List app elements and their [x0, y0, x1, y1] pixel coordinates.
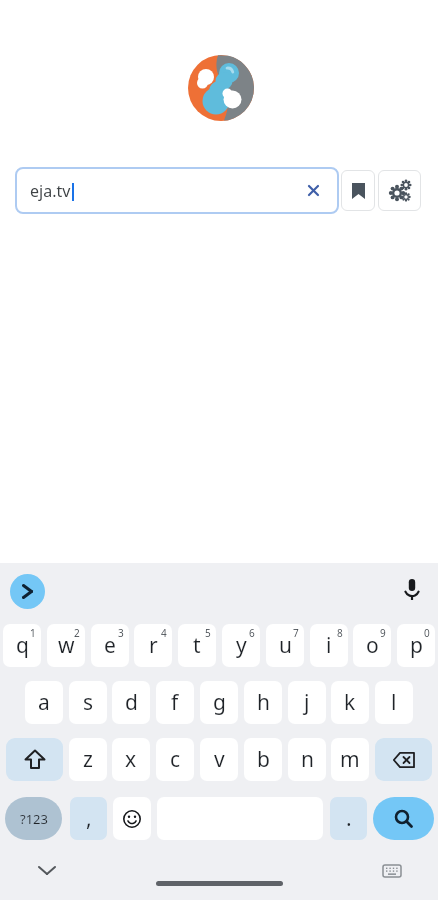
staticText: 0 [424, 626, 430, 640]
button[interactable]: o [353, 624, 391, 667]
staticText: o [366, 631, 379, 660]
staticText: 9 [380, 626, 386, 640]
button[interactable]: p [397, 624, 435, 667]
staticText: eja.tv [30, 180, 71, 202]
button[interactable]: s [69, 681, 107, 724]
button[interactable]: x [112, 738, 150, 781]
staticText: w [58, 631, 75, 660]
staticText: i [326, 631, 332, 660]
staticText: , [86, 804, 92, 833]
button[interactable]: t [178, 624, 216, 667]
staticText: c [170, 745, 181, 774]
staticText: 8 [337, 626, 343, 640]
staticText: n [301, 745, 314, 774]
staticText: k [344, 688, 356, 717]
staticText: 4 [161, 626, 167, 640]
button[interactable] [113, 797, 151, 840]
button[interactable] [373, 797, 434, 840]
button[interactable]: j [288, 681, 326, 724]
button[interactable]: u [266, 624, 304, 667]
button[interactable]: r [134, 624, 172, 667]
button[interactable]: q [3, 624, 41, 667]
staticText: ?123 [20, 810, 48, 828]
button[interactable]: g [200, 681, 238, 724]
staticText: 7 [293, 626, 299, 640]
button[interactable]: i [310, 624, 348, 667]
staticText: l [391, 688, 397, 717]
staticText: 6 [249, 626, 255, 640]
button[interactable] [6, 738, 63, 781]
button[interactable]: m [331, 738, 369, 781]
button[interactable]: eja.tv [18, 170, 336, 211]
staticText: g [213, 688, 226, 717]
button[interactable]: v [200, 738, 238, 781]
button[interactable]: d [112, 681, 150, 724]
staticText: a [38, 688, 50, 717]
staticText: r [149, 631, 158, 660]
staticText: u [279, 631, 292, 660]
button[interactable]: z [69, 738, 107, 781]
button[interactable]: ?123 [5, 797, 62, 840]
staticText: f [171, 688, 179, 717]
staticText: b [257, 745, 270, 774]
staticText: . [346, 804, 352, 833]
button[interactable]: e [91, 624, 129, 667]
staticText: p [410, 631, 423, 660]
button[interactable]: n [288, 738, 326, 781]
staticText: e [104, 631, 116, 660]
button[interactable]: . [330, 797, 367, 840]
button[interactable]: w [47, 624, 85, 667]
button[interactable]: f [156, 681, 194, 724]
button[interactable] [341, 170, 375, 211]
staticText: d [125, 688, 138, 717]
button[interactable] [375, 738, 432, 781]
staticText: x [125, 745, 137, 774]
staticText: 2 [74, 626, 80, 640]
button[interactable]: k [331, 681, 369, 724]
button[interactable]: a [25, 681, 63, 724]
button[interactable]: h [244, 681, 282, 724]
staticText: v [214, 745, 225, 774]
staticText: t [193, 631, 201, 660]
button[interactable] [400, 578, 424, 602]
button[interactable]: c [156, 738, 194, 781]
button[interactable] [10, 574, 45, 609]
staticText: 1 [30, 626, 36, 640]
button[interactable]: b [244, 738, 282, 781]
staticText: z [83, 745, 93, 774]
staticText: q [16, 631, 29, 660]
staticText: y [236, 631, 247, 660]
button[interactable]: , [70, 797, 107, 840]
button[interactable]: y [222, 624, 260, 667]
staticText: m [340, 745, 360, 774]
staticText: 3 [118, 626, 124, 640]
staticText: s [83, 688, 94, 717]
button[interactable] [378, 170, 421, 211]
button[interactable]: l [375, 681, 413, 724]
staticText: j [304, 688, 310, 717]
staticText: 5 [205, 626, 211, 640]
staticText: h [257, 688, 270, 717]
